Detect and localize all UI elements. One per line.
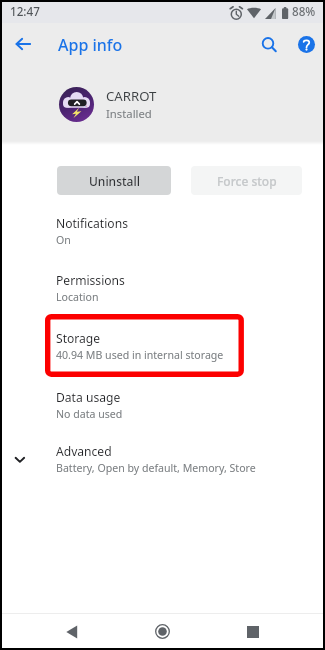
button[interactable]: Help xyxy=(290,28,322,60)
button[interactable]: Data usage xyxy=(2,387,323,431)
staticText: Force stop xyxy=(217,173,277,189)
staticText: Uninstall xyxy=(89,173,140,189)
staticText: On xyxy=(56,233,71,247)
button[interactable]: Home xyxy=(142,614,182,649)
staticText: Notifications xyxy=(56,215,128,231)
button[interactable]: Search xyxy=(254,30,286,62)
button[interactable]: Notifications xyxy=(2,213,323,257)
button[interactable]: Uninstall xyxy=(57,166,171,195)
button[interactable]: Back xyxy=(7,28,39,60)
button[interactable]: Force stop xyxy=(191,166,302,195)
button[interactable]: Storage xyxy=(2,328,323,372)
staticText: 40.94 MB used in internal storage xyxy=(56,348,224,362)
button[interactable]: Advanced xyxy=(2,441,323,485)
staticText: 88% xyxy=(292,3,316,19)
staticText: Location xyxy=(56,290,99,304)
button[interactable]: Back xyxy=(52,614,92,649)
button[interactable]: Permissions xyxy=(2,270,323,314)
staticText: Storage xyxy=(56,330,101,346)
staticText: CARROT xyxy=(106,87,157,105)
staticText: No data used xyxy=(56,407,123,421)
staticText: Advanced xyxy=(56,443,112,459)
button[interactable]: Recents xyxy=(233,614,273,649)
button[interactable]: CARROT xyxy=(2,74,323,134)
staticText: Permissions xyxy=(56,272,125,288)
staticText: 12:47 xyxy=(10,3,40,19)
staticText: Data usage xyxy=(56,389,121,405)
staticText: Battery, Open by default, Memory, Store xyxy=(56,461,256,475)
staticText: Installed xyxy=(106,106,152,121)
staticText: App info xyxy=(58,34,123,56)
